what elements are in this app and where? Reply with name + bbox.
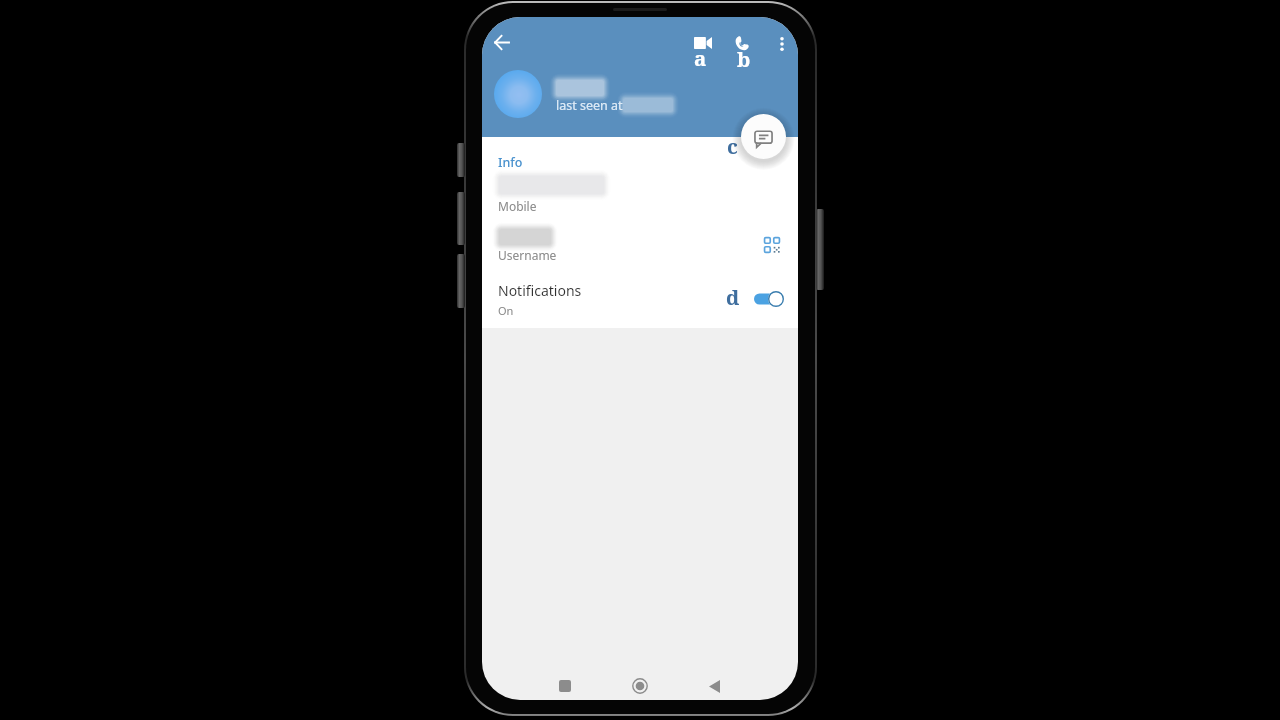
button[interactable]: Notifications [482, 272, 798, 328]
button[interactable]: Call [724, 26, 759, 61]
button[interactable]: Send message [741, 114, 786, 159]
button[interactable]: Back [484, 25, 519, 60]
staticText: last seen at [556, 97, 623, 114]
staticText: Notifications [498, 281, 582, 300]
button[interactable]: Notifications switch [748, 285, 790, 313]
staticText: d [726, 283, 740, 311]
button[interactable]: More options [768, 30, 795, 57]
button[interactable]: Video call [686, 26, 720, 60]
staticText: a [694, 44, 707, 72]
staticText: c [727, 132, 738, 160]
staticText: b [737, 45, 751, 73]
staticText: Info [498, 154, 523, 171]
staticText: Mobile [498, 198, 537, 214]
button[interactable]: Username [482, 217, 798, 269]
button[interactable]: Home [620, 666, 660, 700]
button[interactable]: Back [694, 666, 734, 700]
button[interactable]: Show QR code [757, 230, 787, 260]
staticText: Username [498, 247, 557, 263]
button[interactable]: Mobile [482, 167, 798, 215]
button[interactable]: Recent apps [545, 666, 585, 700]
staticText: On [498, 303, 514, 318]
